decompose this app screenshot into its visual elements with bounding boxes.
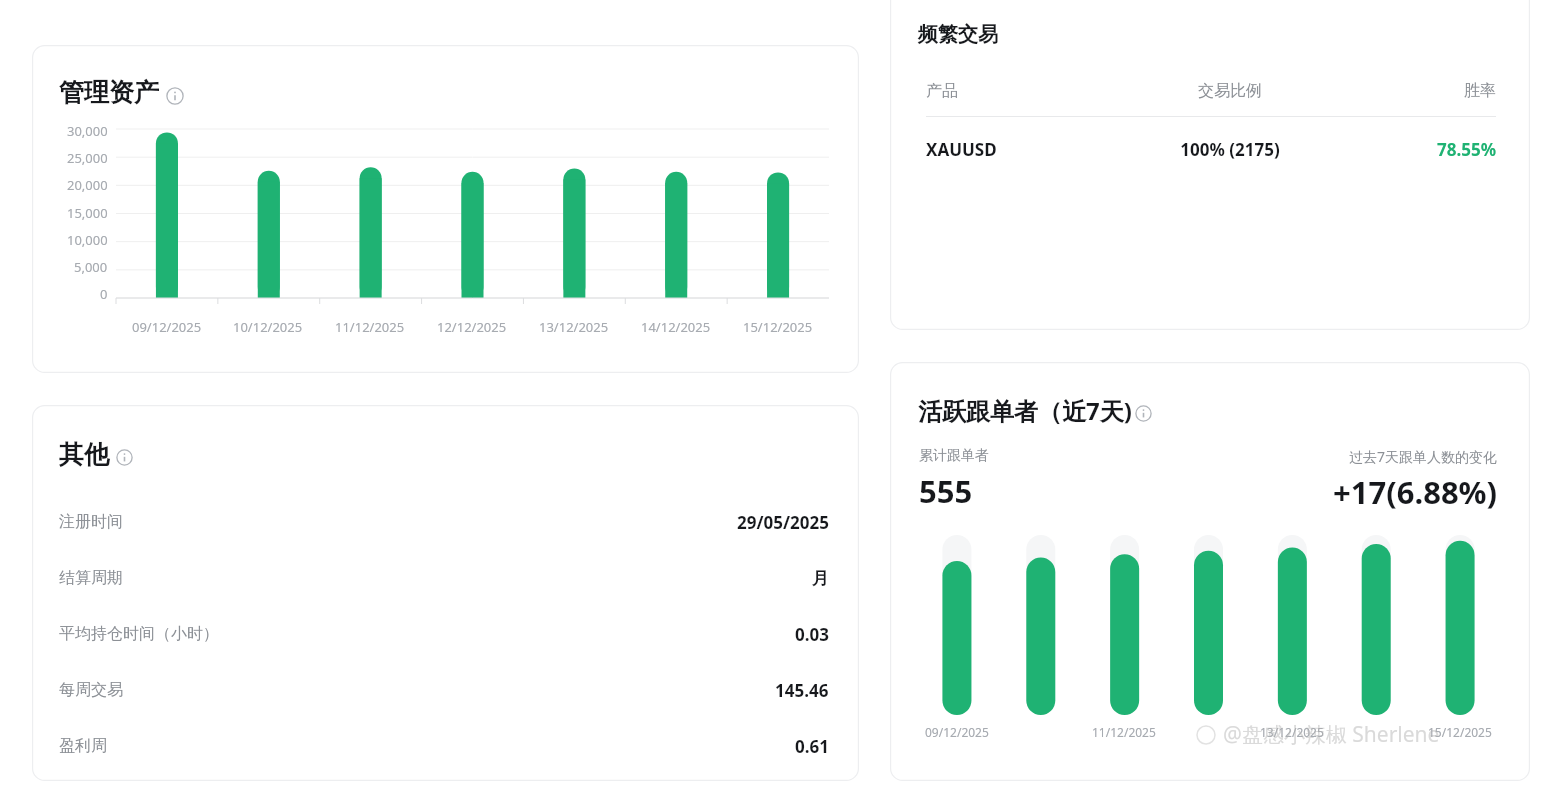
staticText: 活跃跟单者（近7天) xyxy=(918,394,1132,427)
staticText: 盈利周 xyxy=(59,736,107,756)
staticText: 30,000 xyxy=(67,122,108,140)
button[interactable]: 每周交易 xyxy=(32,662,859,718)
staticText: @盘感小辣椒 Sherlene xyxy=(1223,720,1440,749)
staticText: 100% (2175) xyxy=(1119,138,1341,161)
staticText: 交易比例 xyxy=(1119,81,1341,101)
staticText: 29/05/2025 xyxy=(737,511,829,534)
staticText: 09/12/2025 xyxy=(925,724,989,740)
button[interactable]: 管理资产 xyxy=(59,77,184,108)
button[interactable]: 频繁交易 xyxy=(918,22,998,47)
staticText: 产品 xyxy=(926,81,1119,101)
staticText: 15,000 xyxy=(67,204,108,222)
staticText: 11/12/2025 xyxy=(335,318,405,336)
button[interactable]: 平均持仓时间（小时） xyxy=(32,606,859,662)
button[interactable]: 结算周期 xyxy=(32,550,859,606)
staticText: 0.03 xyxy=(795,623,829,646)
staticText: 0.61 xyxy=(795,735,829,758)
staticText: 78.55% xyxy=(1341,138,1496,161)
staticText: 每周交易 xyxy=(59,680,123,700)
staticText: 145.46 xyxy=(775,679,829,702)
button[interactable]: 其他 xyxy=(59,439,133,470)
staticText: 20,000 xyxy=(67,176,108,194)
button[interactable]: XAUUSD xyxy=(890,117,1530,181)
staticText: 13/12/2025 xyxy=(539,318,609,336)
staticText: 月 xyxy=(812,568,829,589)
staticText: 12/12/2025 xyxy=(437,318,507,336)
staticText: 09/12/2025 xyxy=(132,318,202,336)
staticText: 15/12/2025 xyxy=(1428,724,1492,740)
staticText: 过去7天跟单人数的变化 xyxy=(1349,447,1498,466)
staticText: 25,000 xyxy=(67,149,108,167)
staticText: 0 xyxy=(100,285,108,303)
staticText: 平均持仓时间（小时） xyxy=(59,624,219,644)
button[interactable]: More information xyxy=(1135,405,1152,422)
staticText: 结算周期 xyxy=(59,568,123,588)
button[interactable]: More information xyxy=(166,87,184,105)
button[interactable]: 盈利周 xyxy=(32,718,859,774)
button[interactable]: 注册时间 xyxy=(32,494,859,550)
button[interactable]: More information xyxy=(116,449,133,466)
staticText: 11/12/2025 xyxy=(1092,724,1156,740)
staticText: XAUUSD xyxy=(926,138,1119,161)
staticText: 其他 xyxy=(59,439,109,470)
staticText: 15/12/2025 xyxy=(743,318,813,336)
staticText: 555 xyxy=(919,470,973,512)
staticText: 13/12/2025 xyxy=(1260,724,1324,740)
staticText: 胜率 xyxy=(1341,81,1496,101)
staticText: 14/12/2025 xyxy=(641,318,711,336)
staticText: +17(6.88%) xyxy=(1333,471,1498,513)
staticText: 累计跟单者 xyxy=(919,447,989,465)
button[interactable]: 活跃跟单者（近7天) xyxy=(918,394,1152,427)
staticText: 10,000 xyxy=(67,231,108,249)
staticText: 5,000 xyxy=(74,258,108,276)
staticText: 管理资产 xyxy=(59,77,159,108)
staticText: 10/12/2025 xyxy=(233,318,303,336)
staticText: 注册时间 xyxy=(59,512,123,532)
